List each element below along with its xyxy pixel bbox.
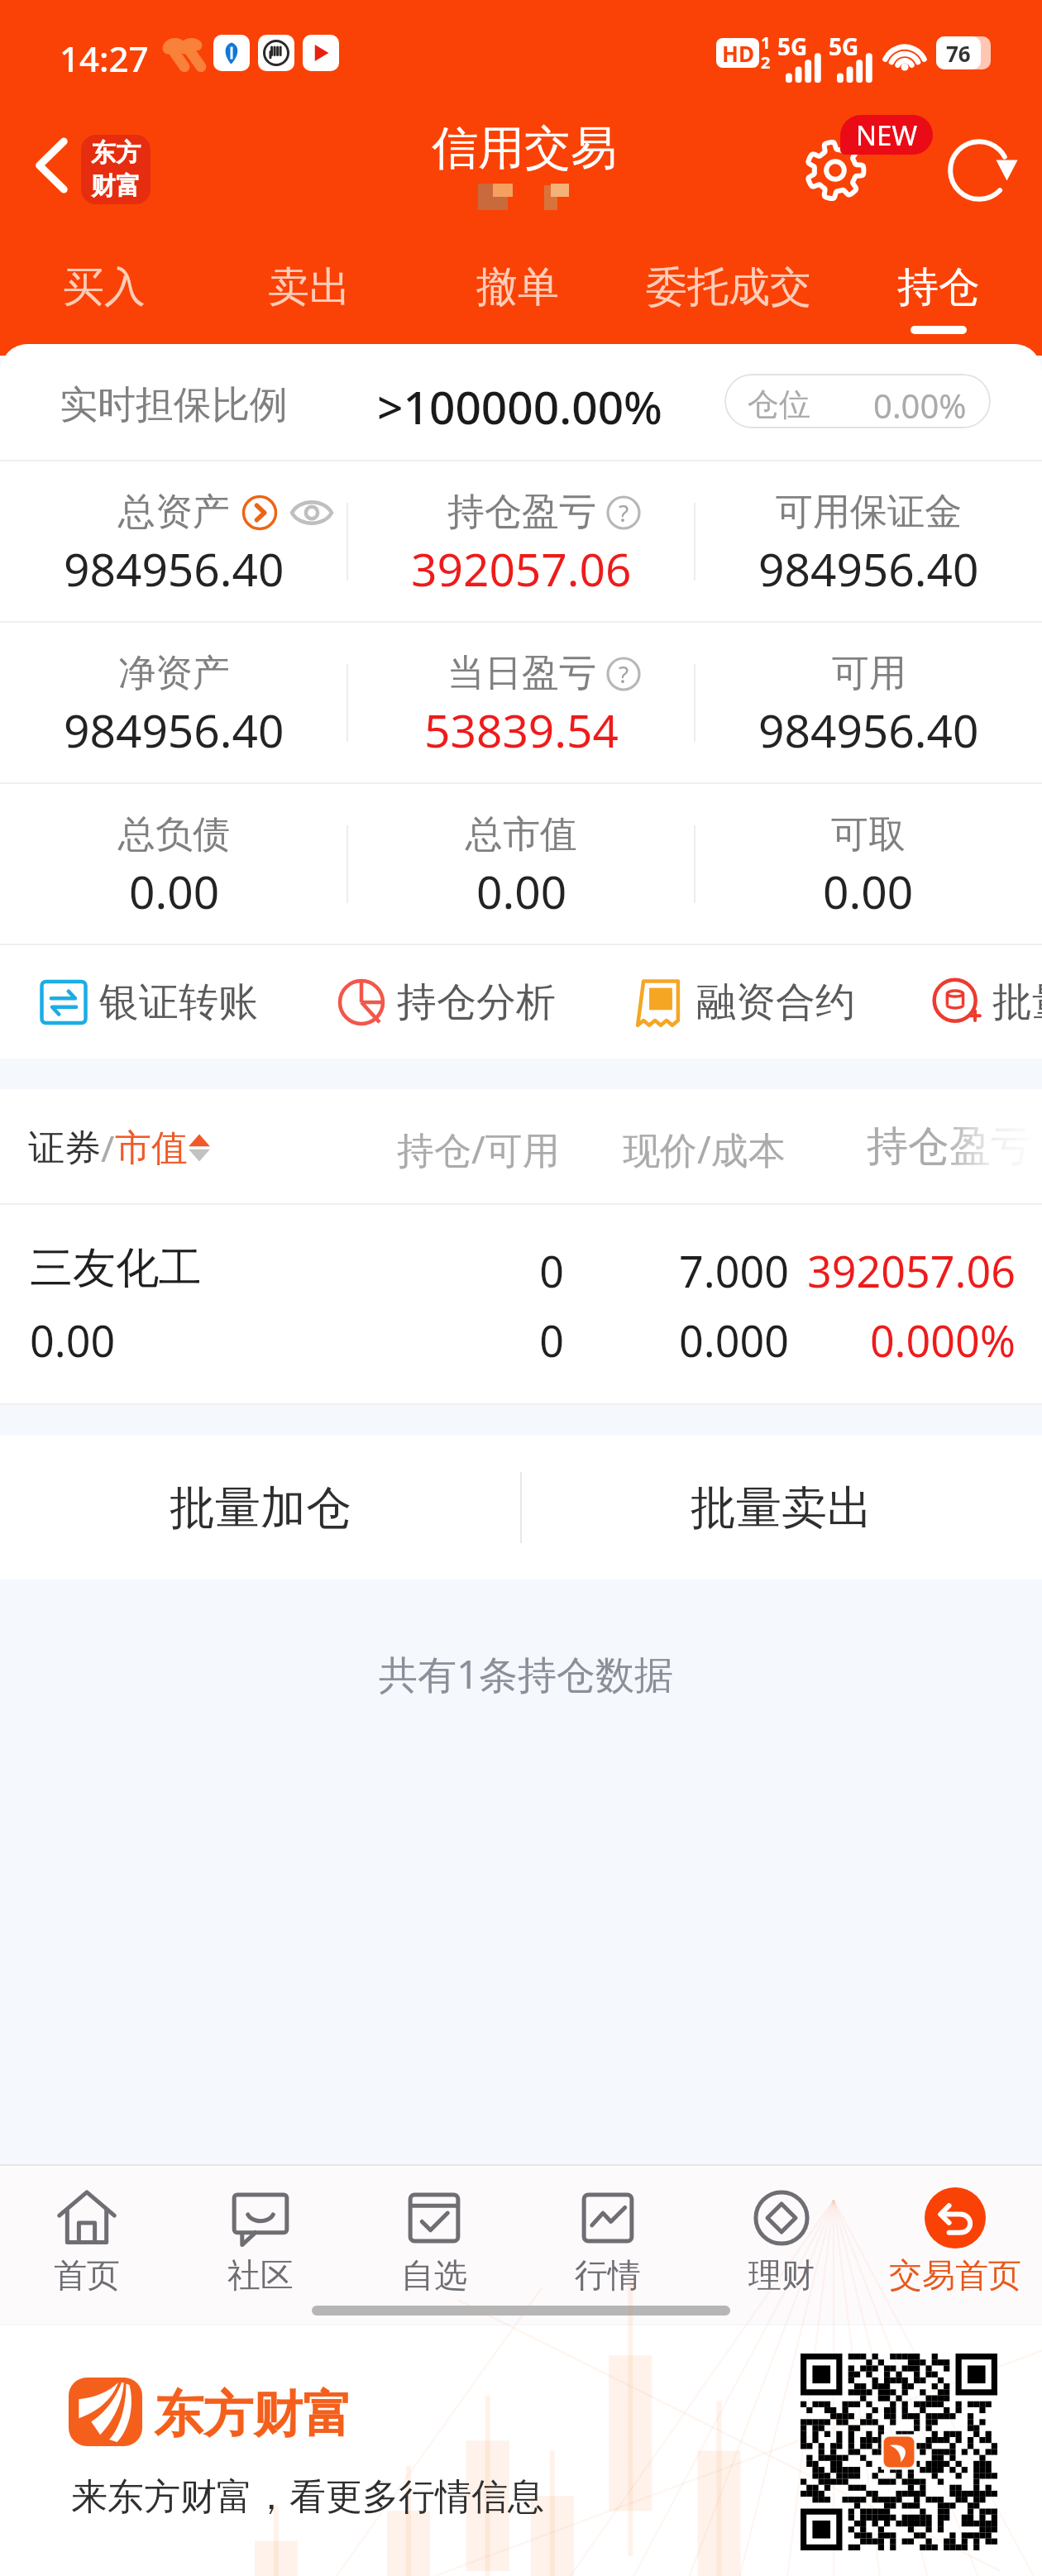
staticText: 可取	[831, 811, 906, 858]
button[interactable]: 总负债	[0, 784, 347, 944]
button[interactable]: Back	[10, 124, 93, 207]
button[interactable]: 行情	[521, 2166, 695, 2302]
button[interactable]: 批量卖出	[521, 1436, 1042, 1580]
staticText: 交易首页	[889, 2254, 1021, 2296]
staticText: 理财	[748, 2254, 815, 2296]
staticText: 实时担保比例	[60, 381, 288, 429]
staticText: 仓位	[748, 385, 810, 424]
button[interactable]: 持仓	[879, 261, 998, 344]
staticText: 5G	[777, 31, 808, 62]
button[interactable]: 当日盈亏	[347, 623, 695, 782]
staticText: 买入	[63, 261, 146, 313]
staticText: 行情	[575, 2254, 641, 2296]
button[interactable]: 卖出	[250, 261, 369, 344]
staticText: 持仓分析	[397, 977, 556, 1027]
staticText: 市值	[115, 1126, 188, 1171]
staticText: 社区	[227, 2254, 294, 2296]
button[interactable]: 首页	[0, 2166, 174, 2302]
button[interactable]: 融资合约	[629, 970, 855, 1035]
button[interactable]: 理财	[695, 2166, 868, 2302]
button[interactable]: 买入	[45, 261, 164, 344]
staticText: 0.00	[129, 860, 220, 922]
staticText: 总资产	[118, 489, 230, 536]
staticText: 0.00	[476, 860, 567, 922]
button[interactable]: 可用保证金	[695, 461, 1042, 621]
staticText: 392057.06	[411, 538, 632, 600]
staticText: /	[101, 1123, 115, 1173]
button[interactable]: 社区	[174, 2166, 347, 2302]
staticText: 批量卖出	[691, 1479, 872, 1537]
staticText: 撤单	[476, 261, 559, 313]
staticText: NEW	[856, 117, 918, 154]
staticText: 批量	[992, 977, 1042, 1027]
staticText: 53839.54	[424, 699, 619, 761]
staticText: 当日盈亏	[447, 650, 596, 697]
staticText: 信用交易	[432, 119, 617, 178]
button[interactable]: 持仓分析	[329, 970, 556, 1035]
staticText: ?	[619, 658, 629, 690]
staticText: 净资产	[118, 650, 230, 697]
staticText: >100000.00%	[377, 375, 662, 437]
staticText: 批量加仓	[170, 1479, 351, 1537]
staticText: 0.00	[30, 1311, 116, 1369]
button[interactable]: 批量加仓	[0, 1436, 521, 1580]
staticText: 可用保证金	[776, 489, 962, 536]
staticText: 卖出	[268, 261, 351, 313]
staticText: 0	[68, 1241, 564, 1300]
staticText: 0.00	[823, 860, 914, 922]
staticText: 委托成交	[646, 261, 811, 313]
staticText: 总负债	[118, 811, 230, 858]
button[interactable]: 可取	[695, 784, 1042, 944]
staticText: 1	[761, 31, 771, 54]
staticText: 可用	[832, 650, 906, 697]
staticText: 14:27	[60, 35, 149, 82]
staticText: 现价/成本	[623, 1124, 786, 1174]
staticText: 东方	[91, 137, 141, 169]
staticText: 0.000	[293, 1311, 789, 1369]
button[interactable]: 三友化工	[0, 1205, 1042, 1403]
button[interactable]: East Money	[81, 135, 151, 204]
staticText: 984956.40	[758, 699, 979, 761]
button[interactable]: 银证转账	[31, 970, 258, 1035]
button[interactable]: 委托成交	[628, 261, 829, 344]
button[interactable]: 总市值	[347, 784, 695, 944]
staticText: 7.000	[293, 1241, 789, 1300]
staticText: 0	[68, 1311, 564, 1369]
staticText: 融资合约	[696, 977, 855, 1027]
button[interactable]: 可用	[695, 623, 1042, 782]
staticText: 392057.06	[519, 1241, 1016, 1300]
button[interactable]: Settings	[796, 131, 875, 210]
button[interactable]: 自选	[347, 2166, 521, 2302]
staticText: ?	[619, 497, 629, 528]
button[interactable]: 净资产	[0, 623, 347, 782]
staticText: 来东方财富，看更多行情信息	[71, 2474, 544, 2520]
staticText: 自选	[401, 2254, 467, 2296]
button[interactable]: 仓位	[724, 374, 991, 428]
staticText: 984956.40	[64, 538, 284, 600]
button[interactable]: 持仓盈亏	[347, 461, 695, 621]
staticText: 984956.40	[64, 699, 284, 761]
staticText: 2	[761, 51, 771, 74]
staticText: 0.00%	[873, 383, 967, 428]
staticText: 持仓盈亏	[867, 1121, 1032, 1173]
button[interactable]: 批量	[925, 970, 1042, 1035]
button[interactable]: 总资产	[0, 461, 347, 621]
staticText: 0.000%	[519, 1311, 1016, 1369]
staticText: 持仓/可用	[397, 1124, 560, 1174]
staticText: 984956.40	[758, 538, 979, 600]
staticText: 76	[946, 39, 971, 68]
staticText: 共有1条持仓数据	[379, 1647, 673, 1700]
staticText: 5G	[829, 31, 859, 62]
button[interactable]: Refresh	[939, 131, 1019, 210]
staticText: 总市值	[466, 811, 577, 858]
button[interactable]: 交易首页	[868, 2166, 1042, 2302]
staticText: 首页	[54, 2254, 120, 2296]
staticText: 证券	[28, 1126, 101, 1171]
staticText: HD	[722, 39, 754, 68]
button[interactable]: 撤单	[458, 261, 577, 344]
staticText: 持仓	[897, 261, 980, 313]
staticText: 银证转账	[99, 977, 258, 1027]
staticText: 财富	[91, 170, 141, 202]
staticText: 三友化工	[30, 1241, 202, 1296]
staticText: 东方财富	[154, 2383, 352, 2446]
